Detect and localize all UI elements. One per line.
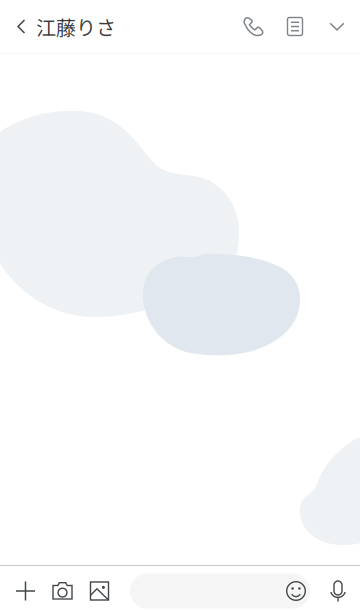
button[interactable]: More	[316, 0, 358, 52]
staticText: 江藤りさ	[36, 12, 116, 41]
button[interactable]: Call	[232, 0, 274, 52]
button[interactable]: Voice message	[317, 566, 359, 616]
button[interactable]: Back	[6, 0, 36, 52]
button[interactable]: Message	[130, 573, 310, 608]
button[interactable]: Attach	[7, 566, 44, 616]
button[interactable]: Camera	[44, 566, 81, 616]
button[interactable]: Photos	[81, 566, 118, 616]
button[interactable]: Notes	[274, 0, 316, 52]
